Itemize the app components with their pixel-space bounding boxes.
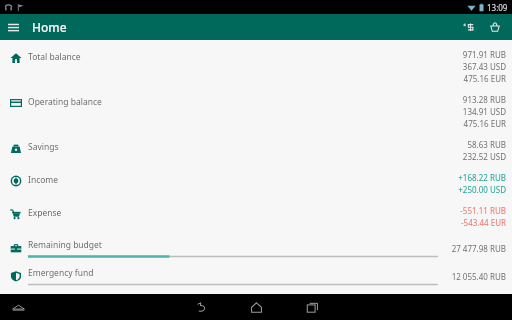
staticText: 27 477.98 RUB: [451, 243, 506, 254]
button[interactable]: Back: [186, 294, 214, 320]
staticText: 58.63 RUB: [467, 139, 506, 150]
staticText: -551.11 RUB: [460, 205, 506, 216]
staticText: 232.52 USD: [462, 151, 506, 162]
staticText: 13:09: [487, 2, 508, 13]
staticText: 475.16 EUR: [463, 73, 506, 84]
staticText: Home: [32, 19, 67, 35]
staticText: 913.28 RUB: [462, 94, 506, 105]
staticText: +250.00 USD: [458, 184, 506, 195]
staticText: Total balance: [28, 51, 462, 63]
button[interactable]: Total balance: [0, 47, 512, 87]
staticText: 367.43 USD: [462, 61, 506, 72]
button[interactable]: Shopping cart: [482, 14, 508, 40]
button[interactable]: Emergency fund: [0, 265, 512, 287]
button[interactable]: Expense: [0, 203, 512, 231]
staticText: +168.22 RUB: [458, 172, 506, 183]
button[interactable]: Open navigation drawer: [0, 14, 26, 40]
button[interactable]: Add transaction: [456, 14, 482, 40]
staticText: -543.44 EUR: [461, 217, 506, 228]
staticText: Income: [28, 174, 458, 186]
staticText: Expense: [28, 207, 460, 219]
staticText: Emergency fund: [28, 267, 94, 279]
button[interactable]: Income: [0, 170, 512, 198]
staticText: Operating balance: [28, 96, 462, 108]
staticText: 971.91 RUB: [462, 49, 506, 60]
staticText: 12 055.40 RUB: [451, 271, 506, 282]
button[interactable]: Menu: [8, 297, 28, 317]
button[interactable]: Recent apps: [298, 294, 326, 320]
button[interactable]: Savings: [0, 137, 512, 165]
button[interactable]: Operating balance: [0, 92, 512, 132]
button[interactable]: Remaining budget: [0, 237, 512, 259]
staticText: 475.16 EUR: [463, 118, 506, 129]
staticText: Remaining budget: [28, 239, 102, 251]
staticText: Savings: [28, 141, 462, 153]
button[interactable]: Home: [242, 294, 270, 320]
staticText: 134.91 USD: [462, 106, 506, 117]
